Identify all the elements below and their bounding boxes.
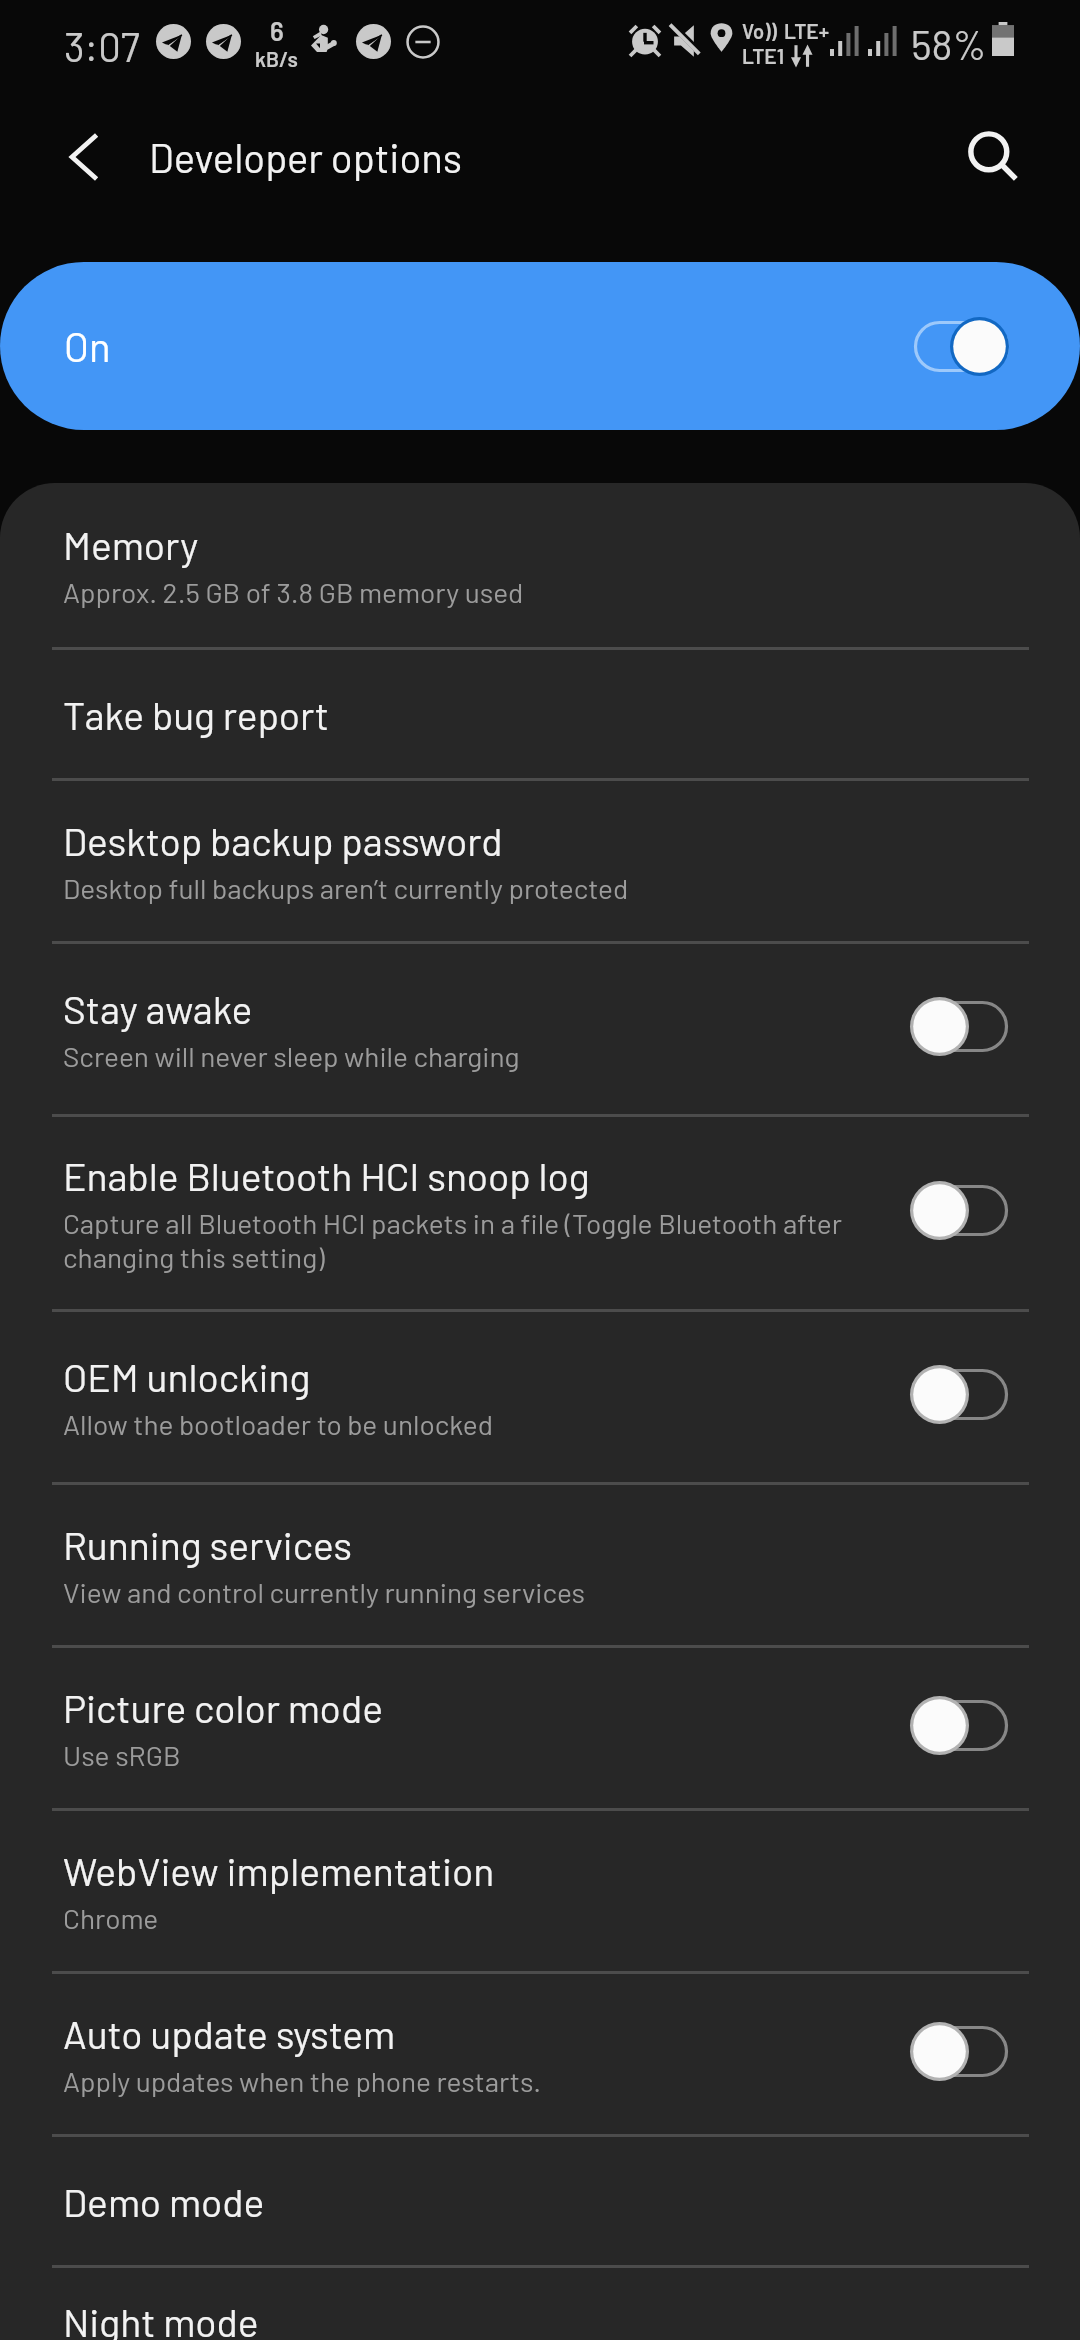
button[interactable]: Picture color mode xyxy=(0,1648,1080,1808)
button[interactable]: Search xyxy=(950,113,1038,201)
staticText: Chrome xyxy=(63,1901,159,1935)
button[interactable]: Enable Bluetooth HCI snoop log xyxy=(0,1117,1080,1309)
staticText: kB/s xyxy=(255,46,298,71)
staticText: Stay awake xyxy=(63,985,253,1032)
button[interactable]: Night mode xyxy=(0,2268,1080,2340)
button[interactable]: Memory xyxy=(0,483,1080,647)
staticText: Demo mode xyxy=(63,2178,265,2225)
button[interactable]: Auto update system xyxy=(0,1974,1080,2134)
staticText: Desktop full backups aren’t currently pr… xyxy=(63,871,629,905)
staticText: View and control currently running servi… xyxy=(63,1575,586,1609)
staticText: Screen will never sleep while charging xyxy=(63,1039,520,1073)
staticText: Approx. 2.5 GB of 3.8 GB memory used xyxy=(63,575,524,609)
staticText: LTE1 xyxy=(742,43,785,68)
staticText: Use sRGB xyxy=(63,1738,181,1772)
staticText: Memory xyxy=(63,521,199,568)
staticText: Picture color mode xyxy=(63,1684,383,1731)
staticText: Running services xyxy=(63,1521,353,1568)
staticText: Capture all Bluetooth HCI packets in a f… xyxy=(63,1206,876,1274)
button[interactable]: Take bug report xyxy=(0,650,1080,778)
staticText: Enable Bluetooth HCI snoop log xyxy=(63,1152,590,1199)
staticText: 58% xyxy=(911,20,987,68)
staticText: LTE+ xyxy=(784,18,830,43)
staticText: On xyxy=(64,322,111,370)
staticText: Take bug report xyxy=(63,691,330,738)
button[interactable]: Demo mode xyxy=(0,2137,1080,2265)
button[interactable]: WebView implementation xyxy=(0,1811,1080,1971)
staticText: 3:07 xyxy=(64,22,140,70)
staticText: Developer options xyxy=(149,133,463,181)
staticText: Apply updates when the phone restarts. xyxy=(63,2064,542,2098)
button[interactable]: Desktop backup password xyxy=(0,781,1080,941)
staticText: Allow the bootloader to be unlocked xyxy=(63,1407,493,1441)
staticText: WebView implementation xyxy=(63,1847,495,1894)
button[interactable]: Navigate up xyxy=(40,113,128,201)
button[interactable]: On xyxy=(0,262,1080,430)
button[interactable]: Stay awake xyxy=(0,944,1080,1114)
staticText: Night mode xyxy=(63,2298,259,2340)
staticText: Vo)) xyxy=(742,19,777,43)
button[interactable]: OEM unlocking xyxy=(0,1312,1080,1482)
staticText: OEM unlocking xyxy=(63,1353,311,1400)
button[interactable]: Running services xyxy=(0,1485,1080,1645)
staticText: 6 xyxy=(270,15,284,46)
staticText: Auto update system xyxy=(63,2010,396,2057)
staticText: Desktop backup password xyxy=(63,817,503,864)
